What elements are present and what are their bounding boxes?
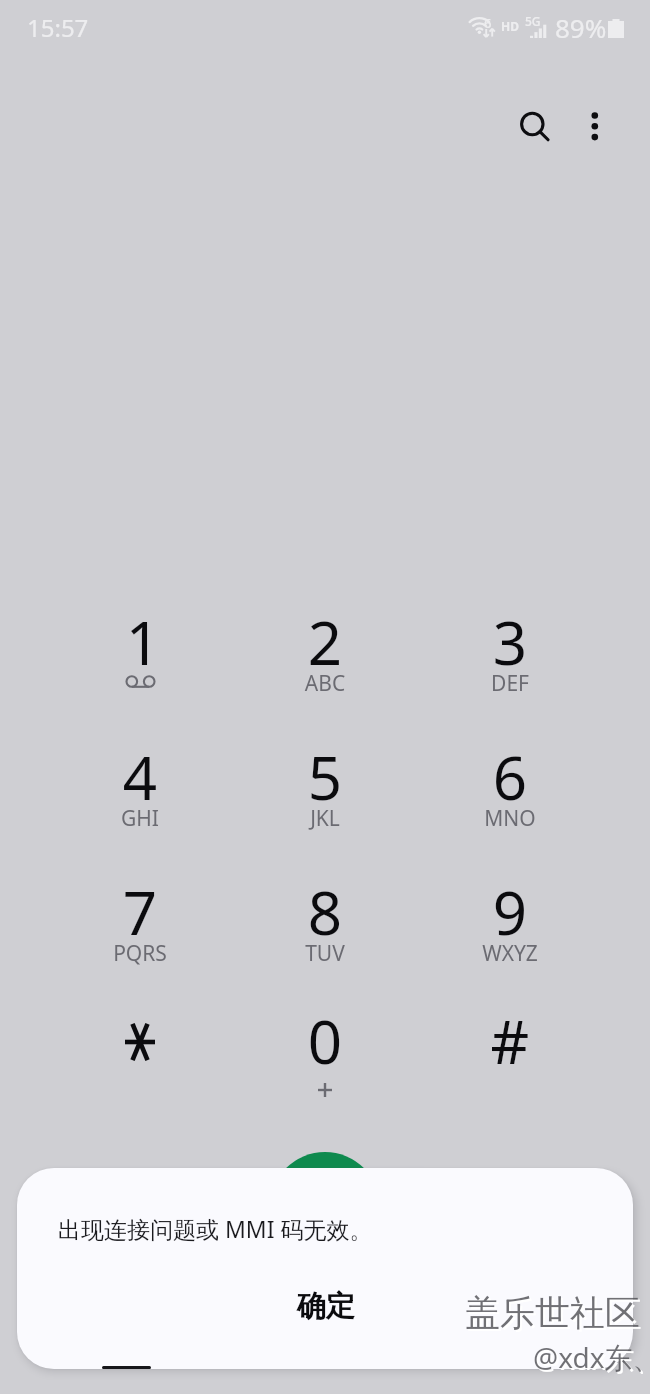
staticText: MNO bbox=[420, 804, 600, 833]
button[interactable]: 确定 bbox=[41, 1268, 609, 1348]
staticText: 6 bbox=[420, 736, 600, 818]
staticText: 2 bbox=[235, 601, 415, 683]
staticText: ABC bbox=[235, 669, 415, 698]
staticText: TUV bbox=[235, 939, 415, 968]
button[interactable]: # bbox=[420, 995, 600, 1107]
staticText: 7 bbox=[50, 871, 230, 953]
button[interactable]: Call bbox=[270, 1152, 380, 1262]
staticText: 5G bbox=[525, 13, 541, 29]
staticText: WXYZ bbox=[420, 939, 600, 968]
button[interactable]: 8 bbox=[235, 866, 415, 978]
button[interactable]: Star bbox=[50, 995, 230, 1107]
staticText: DEF bbox=[420, 669, 600, 698]
button[interactable]: 3 bbox=[420, 596, 600, 708]
staticText: 出现连接问题或 MMI 码无效。 bbox=[58, 1213, 373, 1244]
staticText: # bbox=[420, 1000, 600, 1082]
staticText: 1 bbox=[53, 601, 233, 683]
button[interactable]: 2 bbox=[235, 596, 415, 708]
button[interactable]: More options bbox=[567, 98, 623, 154]
button[interactable]: 9 bbox=[420, 866, 600, 978]
staticText: 3 bbox=[420, 601, 600, 683]
staticText: 6 bbox=[484, 14, 492, 32]
staticText: 4 bbox=[50, 736, 230, 818]
staticText: 89% bbox=[555, 10, 607, 45]
staticText: 盖乐世社区 bbox=[467, 1293, 642, 1337]
staticText: @xdx东、 bbox=[533, 1338, 650, 1376]
staticText: GHI bbox=[50, 804, 230, 833]
staticText: HD bbox=[501, 18, 519, 34]
staticText: JKL bbox=[235, 804, 415, 833]
staticText: 盖乐世社区 bbox=[465, 1291, 640, 1335]
button[interactable]: 5 bbox=[235, 731, 415, 843]
button[interactable]: 1 bbox=[50, 596, 230, 708]
button[interactable]: 6 bbox=[420, 731, 600, 843]
staticText: @xdx东、 bbox=[535, 1340, 650, 1378]
staticText: 15:57 bbox=[27, 11, 89, 44]
button[interactable]: 7 bbox=[50, 866, 230, 978]
staticText: 8 bbox=[235, 871, 415, 953]
button[interactable]: 4 bbox=[50, 731, 230, 843]
button[interactable]: 0 bbox=[235, 995, 415, 1107]
staticText: 9 bbox=[420, 871, 600, 953]
staticText: 确定 bbox=[297, 1288, 355, 1325]
button[interactable]: Search bbox=[504, 96, 560, 152]
staticText: 0 bbox=[235, 1000, 415, 1082]
staticText: PQRS bbox=[50, 939, 230, 968]
staticText: 5 bbox=[235, 736, 415, 818]
